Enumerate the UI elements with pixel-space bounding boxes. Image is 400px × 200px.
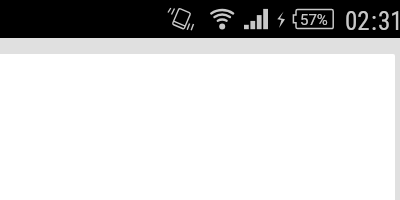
staticText: 31 bbox=[378, 7, 400, 36]
other: Mobile signal bbox=[244, 8, 270, 30]
staticText: 57% bbox=[300, 11, 328, 29]
other: Charging bbox=[277, 11, 285, 29]
other: Battery 57 percent bbox=[293, 9, 334, 30]
other: Vibrate mode bbox=[167, 7, 194, 31]
other: Wi-Fi connected bbox=[209, 8, 235, 30]
staticText: : bbox=[371, 7, 377, 36]
staticText: 02 bbox=[345, 7, 370, 36]
